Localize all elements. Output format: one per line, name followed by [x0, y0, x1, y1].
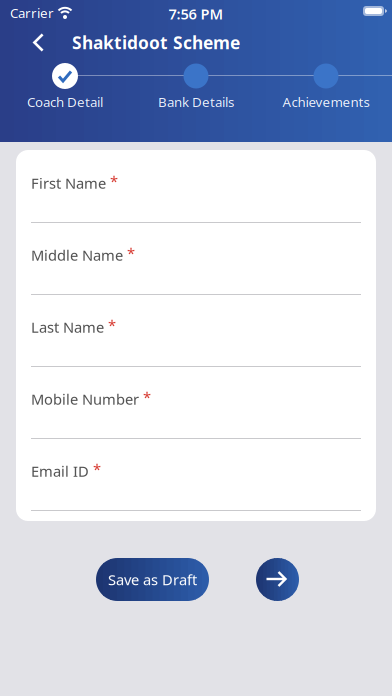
staticText: * — [143, 387, 151, 407]
staticText: Shaktidoot Scheme — [72, 31, 240, 54]
button[interactable]: Back — [25, 25, 52, 60]
staticText: Coach Detail — [27, 93, 103, 111]
staticText: * — [110, 171, 118, 191]
staticText: Carrier — [10, 4, 54, 22]
staticText: Achievements — [282, 93, 369, 111]
button[interactable]: Coach Detail — [5, 63, 125, 111]
staticText: First Name — [31, 173, 106, 193]
staticText: Mobile Number — [31, 389, 139, 409]
button[interactable]: Middle Name — [31, 246, 361, 295]
staticText: * — [127, 243, 135, 263]
staticText: 7:56 PM — [168, 4, 223, 23]
button[interactable]: Save as Draft — [96, 558, 209, 601]
staticText: Email ID — [31, 461, 89, 481]
staticText: * — [93, 459, 101, 479]
button[interactable]: Next — [256, 558, 299, 601]
staticText: Middle Name — [31, 245, 123, 265]
button[interactable]: Email ID — [31, 462, 361, 511]
button[interactable]: Mobile Number — [31, 390, 361, 439]
staticText: Bank Details — [158, 93, 234, 111]
staticText: * — [108, 315, 116, 335]
staticText: Save as Draft — [108, 570, 197, 589]
button[interactable]: Achievements — [266, 63, 386, 111]
staticText: Last Name — [31, 317, 104, 337]
button[interactable]: Bank Details — [136, 63, 256, 111]
button[interactable]: Last Name — [31, 318, 361, 367]
button[interactable]: First Name — [31, 174, 361, 223]
